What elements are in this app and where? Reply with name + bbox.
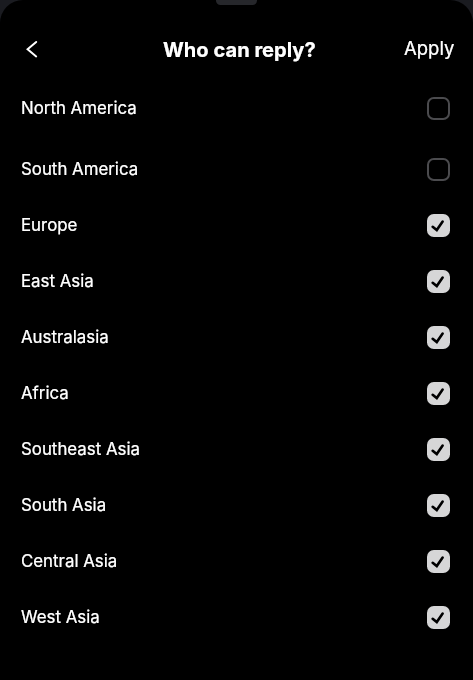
button[interactable]: West Asia — [0, 589, 473, 645]
staticText: South Asia — [21, 495, 107, 515]
button[interactable]: Apply — [394, 31, 465, 65]
button[interactable]: South Asia — [0, 477, 473, 533]
button[interactable]: Africa — [0, 365, 473, 421]
staticText: Africa — [21, 383, 69, 403]
button[interactable]: North America — [0, 80, 473, 136]
staticText: East Asia — [21, 271, 94, 291]
button[interactable]: Back — [9, 24, 57, 72]
staticText: West Asia — [21, 607, 100, 627]
staticText: Europe — [21, 215, 78, 235]
staticText: Central Asia — [21, 551, 118, 571]
staticText: Australasia — [21, 327, 109, 347]
button[interactable]: South America — [0, 141, 473, 197]
button[interactable]: Central Asia — [0, 533, 473, 589]
staticText: Apply — [404, 37, 455, 59]
button[interactable]: Europe — [0, 197, 473, 253]
button[interactable]: Southeast Asia — [0, 421, 473, 477]
staticText: Southeast Asia — [21, 439, 140, 459]
button[interactable]: East Asia — [0, 253, 473, 309]
staticText: South America — [21, 159, 139, 179]
staticText: Who can reply? — [163, 38, 316, 62]
button[interactable]: Australasia — [0, 309, 473, 365]
staticText: North America — [21, 98, 137, 118]
